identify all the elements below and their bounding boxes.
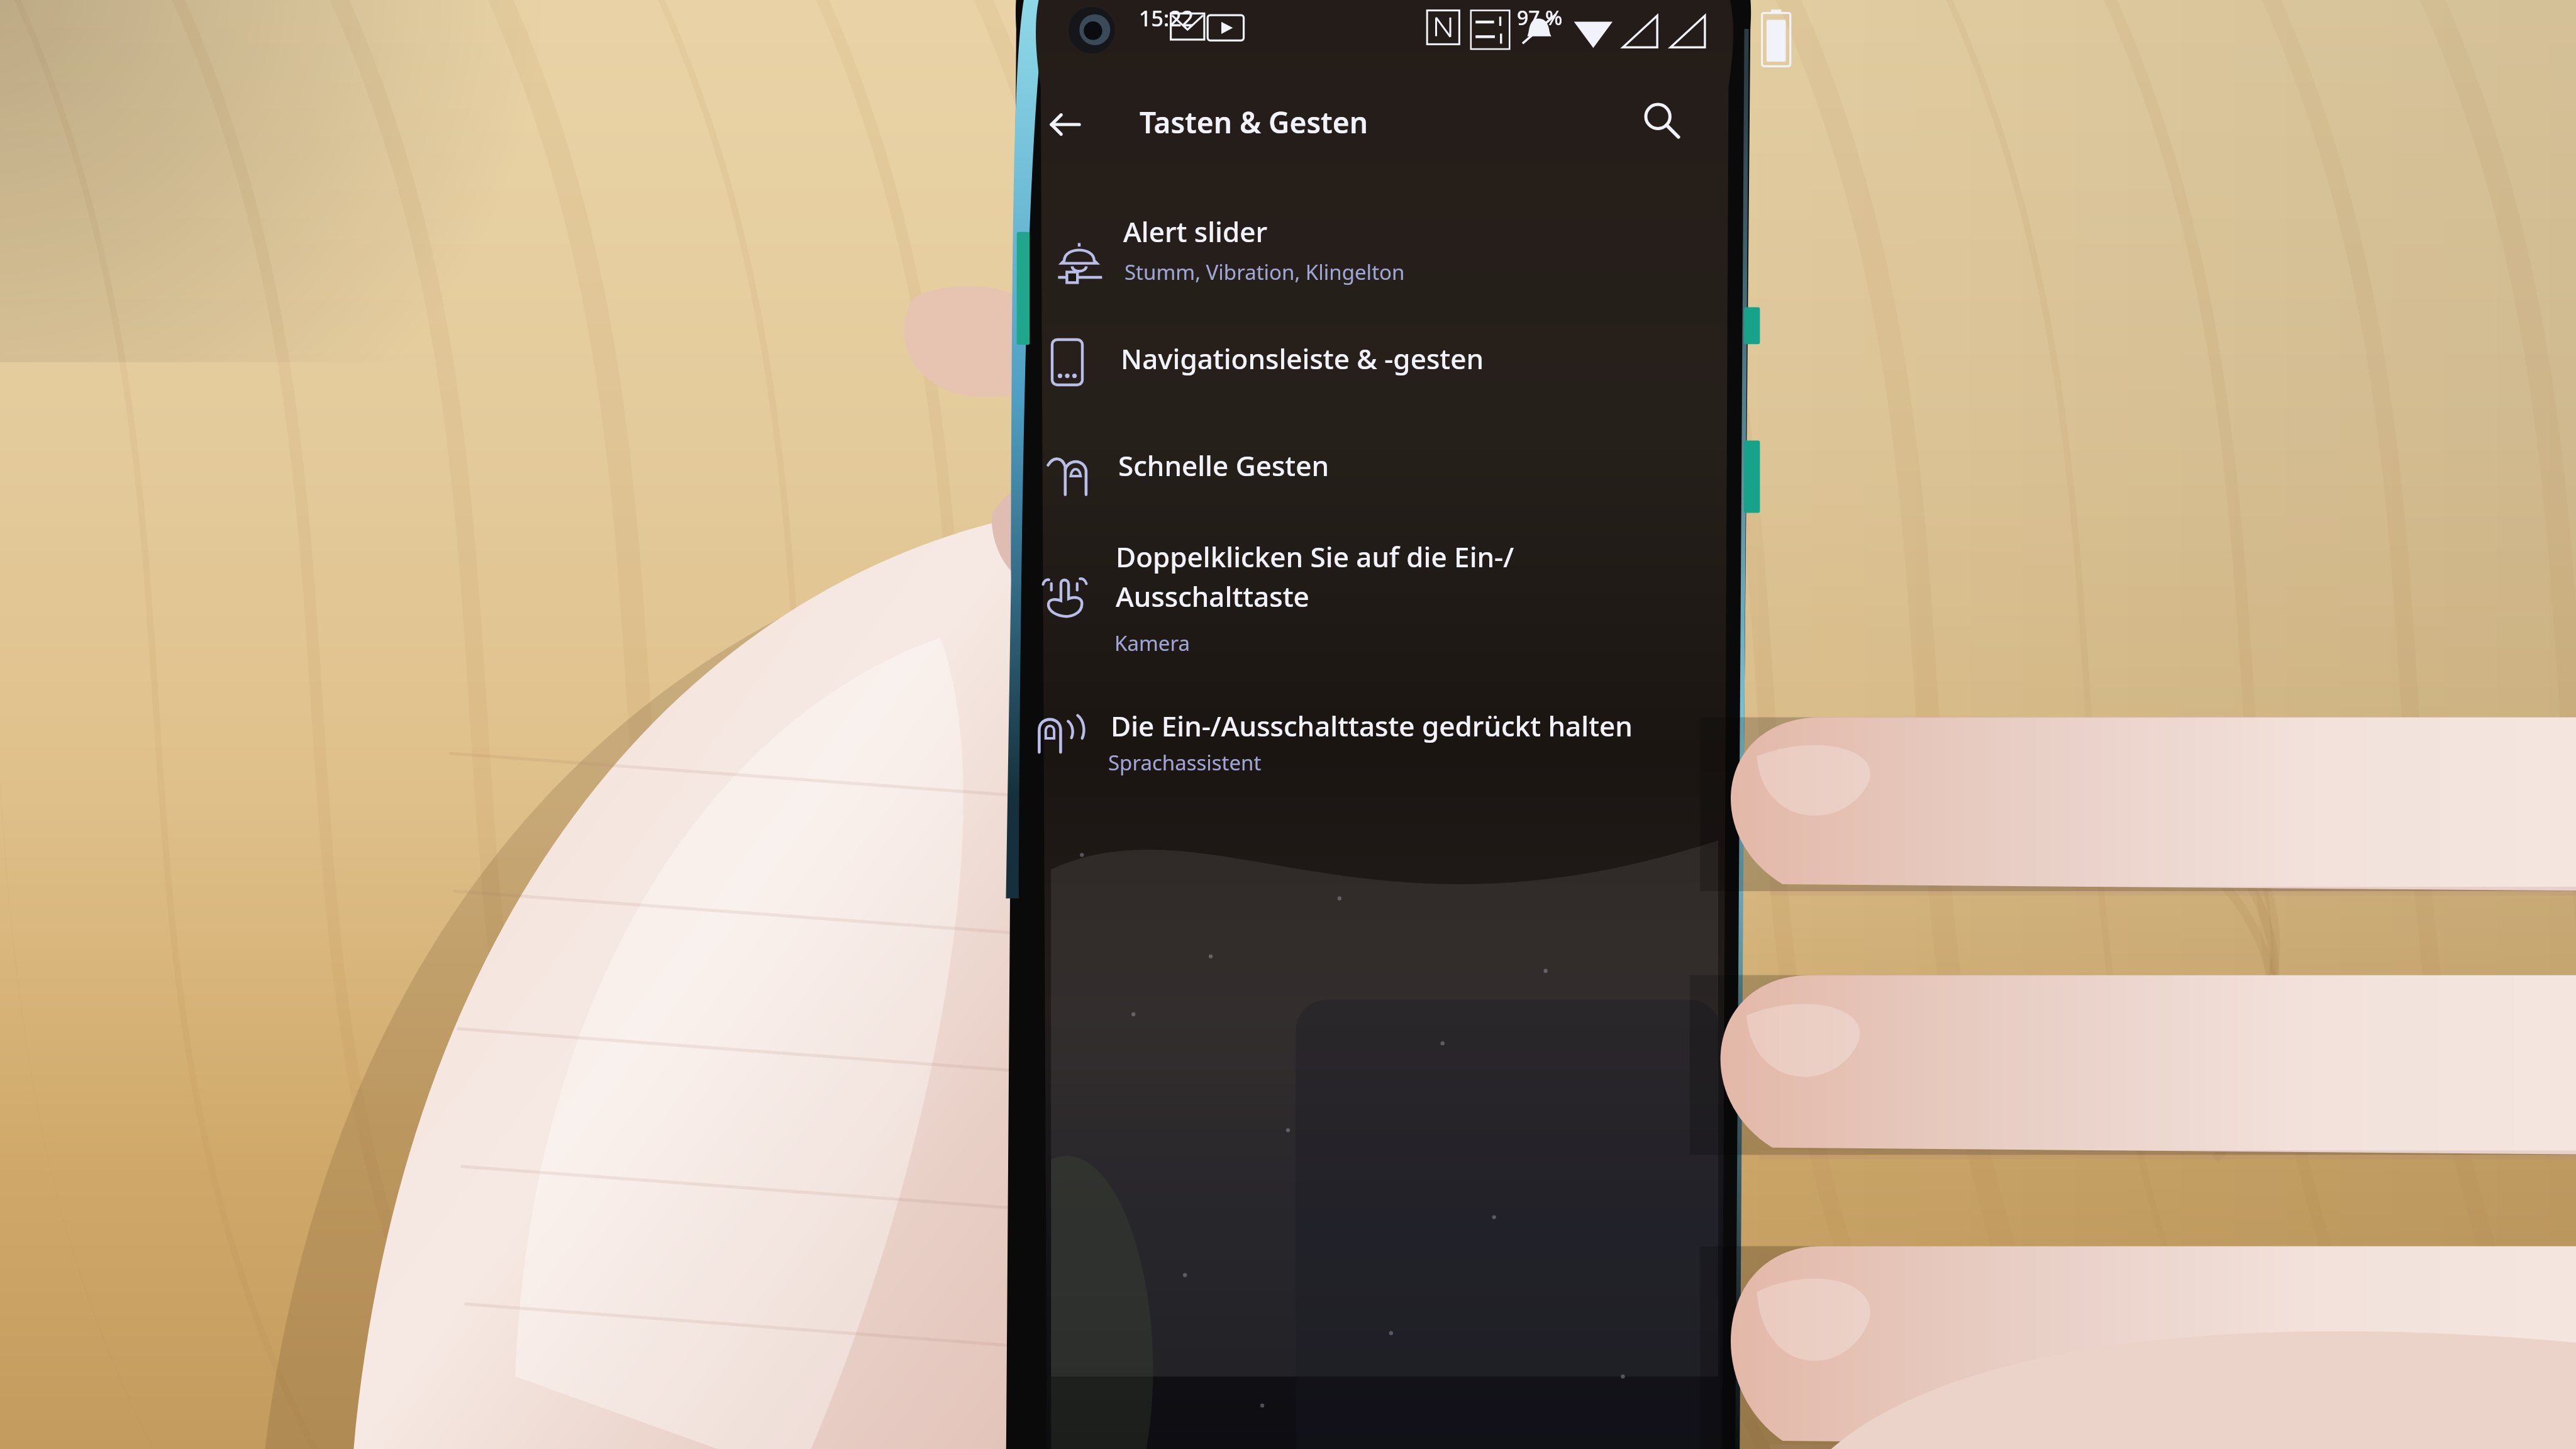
staticText: Doppelklicken Sie auf die Ein-/	[1116, 538, 1514, 575]
staticText: Alert slider	[1123, 213, 1268, 250]
staticText: 97 %	[1517, 4, 1563, 31]
button[interactable]: Zurück	[1035, 94, 1096, 155]
button[interactable]	[1031, 497, 1736, 610]
button[interactable]	[1031, 409, 1736, 497]
staticText: Die Ein-/Ausschalttaste gedrückt halten	[1111, 707, 1633, 745]
staticText: Navigationsleiste & -gesten	[1121, 340, 1484, 377]
staticText: 15:22	[1139, 4, 1194, 33]
staticText: Kamera	[1114, 629, 1190, 657]
staticText: Sprachassistent	[1108, 748, 1262, 777]
button[interactable]	[1031, 208, 1736, 296]
button[interactable]: Tasten & Gesten	[1140, 103, 1368, 142]
staticText: Ausschalttaste	[1116, 577, 1309, 615]
button[interactable]	[1031, 321, 1736, 409]
staticText: Stumm, Vibration, Klingelton	[1124, 258, 1405, 286]
button[interactable]: Suchen	[1630, 90, 1690, 150]
button[interactable]	[1031, 689, 1736, 777]
staticText: Schnelle Gesten	[1118, 447, 1330, 484]
